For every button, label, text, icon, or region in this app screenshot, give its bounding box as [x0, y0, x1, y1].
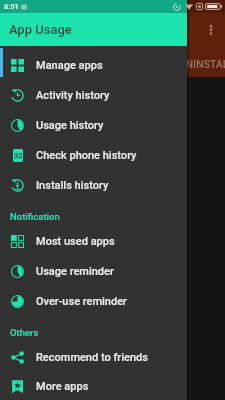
staticText: Usage history — [36, 119, 104, 132]
button[interactable]: Over-use reminder — [0, 286, 187, 316]
staticText: Others — [10, 327, 39, 338]
button[interactable]: Activity history — [0, 80, 187, 110]
button[interactable]: Installs history — [0, 170, 187, 200]
button[interactable]: More options — [201, 20, 221, 40]
staticText: Activity history — [36, 89, 110, 102]
button[interactable]: Recommend to friends — [0, 342, 187, 372]
button[interactable]: Most used apps — [0, 226, 187, 256]
staticText: UNINSTALL — [179, 58, 225, 70]
staticText: 8:51 — [4, 2, 19, 11]
button[interactable]: More apps — [0, 372, 187, 400]
staticText: Most used apps — [36, 235, 115, 248]
button[interactable]: Manage apps — [0, 50, 187, 80]
staticText: Check phone history — [36, 149, 137, 162]
button[interactable]: 32 — [0, 140, 187, 170]
staticText: Recommend to friends — [36, 351, 148, 364]
staticText: More apps — [36, 380, 89, 393]
staticText: Installs history — [36, 179, 109, 192]
staticText: Usage reminder — [36, 265, 114, 278]
button[interactable]: Usage reminder — [0, 256, 187, 286]
staticText: Manage apps — [36, 59, 103, 72]
staticText: Notification — [10, 211, 60, 222]
staticText: App Usage — [9, 22, 72, 37]
staticText: Over-use reminder — [36, 295, 127, 308]
button[interactable]: UNINSTALL — [179, 51, 225, 77]
button[interactable]: Usage history — [0, 110, 187, 140]
staticText: 32 — [14, 151, 23, 160]
